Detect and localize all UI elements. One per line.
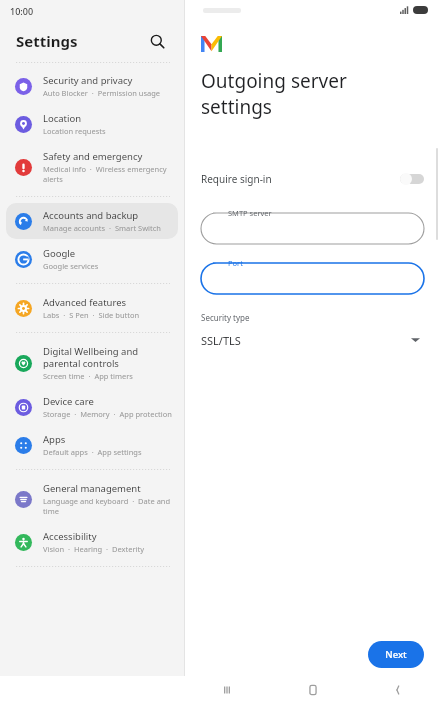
button[interactable]: Device care [6,389,178,425]
staticText: Advanced features [43,296,127,309]
staticText: Safety and emergency [43,150,143,163]
button[interactable]: Back [355,676,440,704]
button[interactable] [201,213,424,244]
staticText: Screen time · App timers [43,371,133,381]
staticText: Storage · Memory · App protection [43,409,172,419]
button[interactable]: Apps [6,427,178,463]
staticText: Location requests [43,126,106,136]
staticText: Security type [201,312,250,323]
staticText: Labs · S Pen · Side button [43,310,140,320]
staticText: Port [228,258,243,268]
button[interactable]: Location [6,106,178,142]
staticText: Auto Blocker · Permission usage [43,88,161,98]
staticText: Apps [43,433,66,446]
staticText: Medical info · Wireless emergency alerts [43,164,172,184]
staticText: Google services [43,261,99,271]
button[interactable]: Safety and emergency [6,144,178,190]
button[interactable]: Next [368,641,424,668]
button[interactable]: Recents [184,676,270,704]
staticText: Next [385,648,407,661]
staticText: SMTP server [228,208,272,218]
button[interactable]: Google [6,241,178,277]
button[interactable]: SSL/TLS [185,329,440,351]
staticText: Location [43,112,82,125]
staticText: Security and privacy [43,74,133,87]
button[interactable] [201,263,424,294]
staticText: Accessibility [43,530,97,543]
staticText: General management [43,482,141,495]
staticText: Manage accounts · Smart Switch [43,223,161,233]
staticText: Accounts and backup [43,209,139,222]
button[interactable]: Accounts and backup [6,203,178,239]
staticText: Settings [16,31,78,51]
staticText: SSL/TLS [201,333,241,348]
staticText: Language and keyboard · Date and time [43,496,172,516]
staticText: 10:00 [10,5,34,17]
staticText: Outgoing server settings [201,68,347,120]
button[interactable]: Advanced features [6,290,178,326]
button[interactable]: Home [270,676,355,704]
staticText: Vision · Hearing · Dexterity [43,544,145,554]
button[interactable]: Search [144,28,170,54]
button[interactable]: General management [6,476,178,522]
button[interactable]: Accessibility [6,524,178,560]
staticText: Digital Wellbeing and parental controls [43,345,172,370]
button[interactable]: Digital Wellbeing and parental controls [6,339,178,387]
button[interactable]: Require sign-in [185,164,440,194]
staticText: Require sign-in [201,172,272,186]
staticText: Google [43,247,76,260]
staticText: Device care [43,395,94,408]
button[interactable]: Security and privacy [6,68,178,104]
staticText: Default apps · App settings [43,447,142,457]
